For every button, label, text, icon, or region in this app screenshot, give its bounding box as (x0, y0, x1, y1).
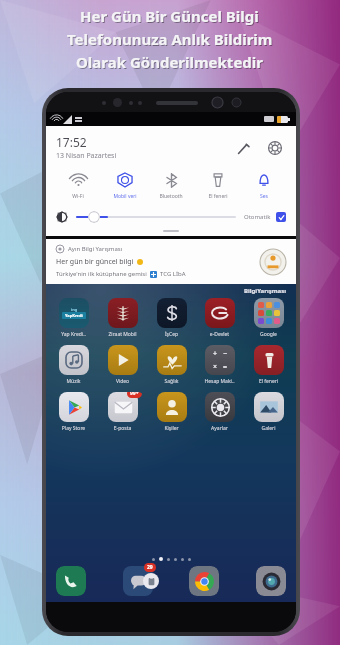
staticText: Müzik (52, 378, 95, 385)
staticText: Ziraat Mobil (101, 331, 144, 338)
button[interactable]: Ayın Bilgi Yarışması (46, 239, 296, 284)
button[interactable]: Müzik (52, 345, 95, 385)
staticText: El feneri (247, 378, 290, 385)
button[interactable]: Play Store (52, 392, 95, 432)
staticText: Ses (242, 193, 286, 200)
staticText: Hesap Maki.. (198, 378, 241, 385)
staticText: Google (247, 331, 290, 338)
staticText: Olarak Gönderilmektedir (76, 52, 264, 72)
staticText: = (223, 362, 228, 372)
button[interactable]: Ayarlar (264, 137, 286, 159)
staticText: Olarak Gönderilmektedir (77, 53, 265, 73)
staticText: Türkiye'nin ilk kütüphane gemisi (56, 270, 147, 278)
button[interactable]: e-Devlet (198, 298, 241, 338)
button[interactable]: El feneri (196, 171, 240, 200)
staticText: e-Devlet (198, 331, 241, 338)
staticText: 17:52 (56, 134, 87, 150)
button[interactable]: Otomatik parlaklık (276, 212, 286, 222)
staticText: Galeri (247, 425, 290, 432)
button[interactable]: Video (101, 345, 144, 385)
button[interactable]: Mobil veri (103, 171, 147, 200)
button[interactable]: Wi-Fi (56, 171, 100, 200)
staticText: Bluetooth (149, 193, 193, 200)
staticText: Telefonunuza Anlık Bildirim (68, 30, 274, 50)
button[interactable]: Dosyalar (143, 573, 159, 589)
staticText: TCG LİbA (160, 270, 186, 278)
button[interactable]: Ses (242, 171, 286, 200)
staticText: Her Gün Bir Güncel Bilgi (81, 7, 260, 27)
staticText: ing (71, 307, 78, 312)
button[interactable] (76, 210, 236, 224)
button[interactable]: Ziraat Mobil (101, 298, 144, 338)
staticText: El feneri (196, 193, 240, 200)
staticText: Her Gün Bir Güncel Bilgi (80, 6, 259, 26)
staticText: Ayın Bilgi Yarışması (68, 245, 123, 253)
button[interactable]: Bluetooth (149, 171, 193, 200)
button[interactable]: ing (52, 298, 95, 338)
staticText: Kişiler (150, 425, 193, 432)
staticText: + (213, 349, 218, 359)
staticText: Telefonunuza Anlık Bildirim (67, 29, 273, 49)
staticText: YapKredi (65, 313, 83, 318)
staticText: Mobil veri (103, 193, 147, 200)
staticText: Play Store (52, 425, 95, 432)
staticText: İşCep (150, 331, 193, 338)
button[interactable]: El feneri (247, 345, 290, 385)
staticText: Video (101, 378, 144, 385)
button[interactable]: Telefon (56, 566, 86, 596)
staticText: Wi-Fi (56, 193, 100, 200)
staticText: BilgiYarışması (244, 287, 286, 295)
button[interactable]: 99+ (101, 392, 144, 432)
staticText: × (213, 362, 218, 372)
button[interactable]: Düzenle (232, 137, 254, 159)
staticText: Ayarlar (198, 425, 241, 432)
button[interactable]: Google (247, 298, 290, 338)
button[interactable]: Chrome (189, 566, 219, 596)
staticText: Yap Kredi.. (52, 331, 95, 338)
button[interactable]: Kişiler (150, 392, 193, 432)
staticText: Otomatik (244, 213, 271, 221)
staticText: 99+ (130, 392, 139, 397)
button[interactable]: İşCep (150, 298, 193, 338)
button[interactable]: Galeri (247, 392, 290, 432)
staticText: 29 (147, 564, 153, 571)
staticText: Her gün bir güncel bilgi (56, 257, 134, 267)
button[interactable]: Kamera (256, 566, 286, 596)
staticText: Sağlık (150, 378, 193, 385)
staticText: 13 Nisan Pazartesi (56, 151, 117, 161)
button[interactable]: + (198, 345, 241, 385)
staticText: E-posta (101, 425, 144, 432)
button[interactable]: Ayarlar (198, 392, 241, 432)
staticText: − (223, 349, 228, 359)
button[interactable]: Sağlık (150, 345, 193, 385)
button[interactable]: Mesajlar (123, 566, 153, 596)
